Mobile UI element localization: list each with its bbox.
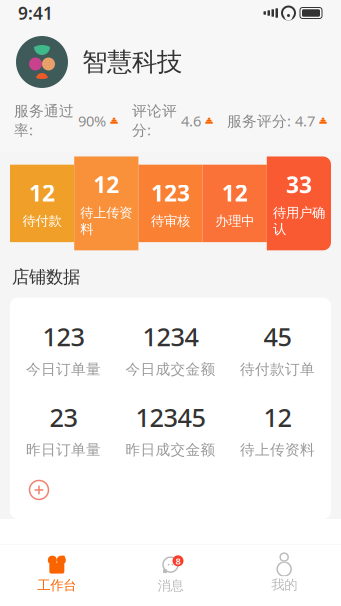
staticText: 昨日成交金额 [125, 441, 215, 459]
staticText: 12 [222, 178, 248, 208]
staticText: 今日成交金额 [125, 360, 215, 378]
staticText: 8 [175, 555, 180, 567]
button[interactable]: 123 [138, 165, 203, 242]
button[interactable]: 8 [114, 549, 227, 600]
staticText: 90% [78, 111, 106, 130]
staticText: 待付款 [23, 213, 62, 229]
staticText: 123 [42, 320, 84, 353]
staticText: 1234 [142, 320, 198, 353]
button[interactable]: 我的 [227, 550, 341, 599]
button[interactable]: 12 [10, 165, 74, 242]
staticText: 办理中 [215, 213, 254, 229]
staticText: 消息 [157, 578, 183, 594]
staticText: 智慧科技 [82, 46, 182, 77]
staticText: 店铺数据 [12, 266, 80, 288]
staticText: 工作台 [37, 577, 76, 593]
staticText: 4.7 [295, 111, 315, 130]
staticText: 我的 [271, 577, 297, 593]
staticText: 待上传资料 [80, 205, 132, 237]
staticText: 服务通过率: [14, 102, 74, 139]
button[interactable]: 12 [74, 156, 138, 250]
staticText: 45 [263, 320, 291, 353]
staticText: 33 [286, 169, 312, 200]
staticText: 服务评分: [227, 111, 291, 130]
staticText: 9:41 [18, 1, 53, 24]
button[interactable]: Shop avatar [16, 36, 68, 88]
staticText: 昨日订单量 [26, 441, 101, 459]
staticText: 123 [151, 178, 190, 208]
staticText: 待付款订单 [240, 360, 315, 378]
staticText: 4.6 [181, 111, 201, 130]
staticText: 12 [263, 400, 291, 434]
staticText: 待审核 [151, 213, 190, 229]
staticText: 待用户确认 [273, 205, 325, 237]
staticText: 今日订单量 [26, 360, 101, 378]
staticText: 12 [29, 178, 55, 208]
staticText: 评论评分: [132, 102, 177, 139]
staticText: 12 [93, 169, 119, 200]
staticText: 待上传资料 [240, 441, 315, 459]
button[interactable]: 工作台 [0, 549, 114, 599]
button[interactable]: Add data module [24, 475, 54, 505]
button[interactable]: 12 [203, 165, 267, 242]
staticText: 12345 [135, 400, 205, 434]
staticText: 23 [49, 400, 77, 434]
button[interactable]: 33 [267, 156, 331, 250]
